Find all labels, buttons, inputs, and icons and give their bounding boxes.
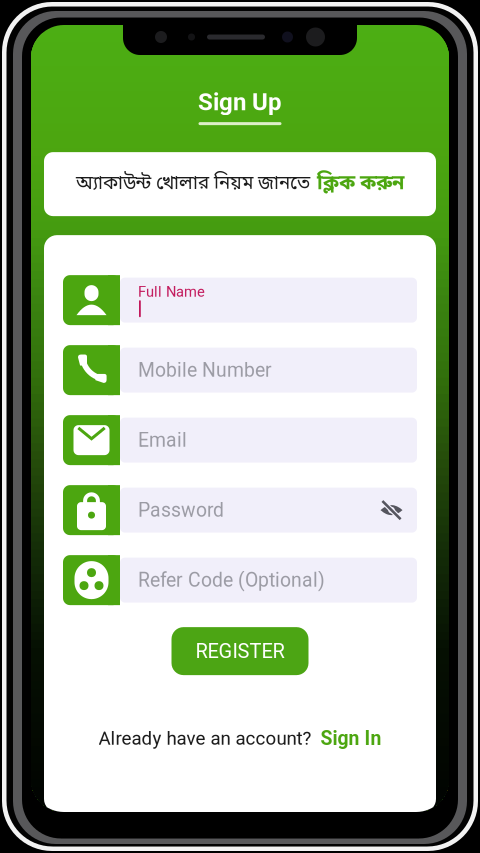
staticText: REGISTER bbox=[195, 639, 284, 663]
staticText: Password bbox=[138, 499, 224, 521]
button[interactable]: Sign In bbox=[320, 727, 381, 750]
staticText: Mobile Number bbox=[138, 359, 272, 381]
staticText: Full Name bbox=[138, 283, 205, 300]
staticText: ক্লিক করুন bbox=[317, 171, 404, 197]
staticText: Email bbox=[138, 429, 187, 451]
staticText: Sign In bbox=[320, 727, 381, 750]
button[interactable]: অ্যাকাউন্ট খোলার নিয়ম জানতে bbox=[44, 152, 436, 216]
staticText: Refer Code (Optional) bbox=[138, 569, 325, 591]
staticText: অ্যাকাউন্ট খোলার নিয়ম জানতে bbox=[76, 172, 310, 196]
staticText: Sign Up bbox=[198, 88, 282, 116]
button[interactable]: REGISTER bbox=[171, 627, 308, 675]
staticText: Already have an account? bbox=[98, 727, 311, 749]
